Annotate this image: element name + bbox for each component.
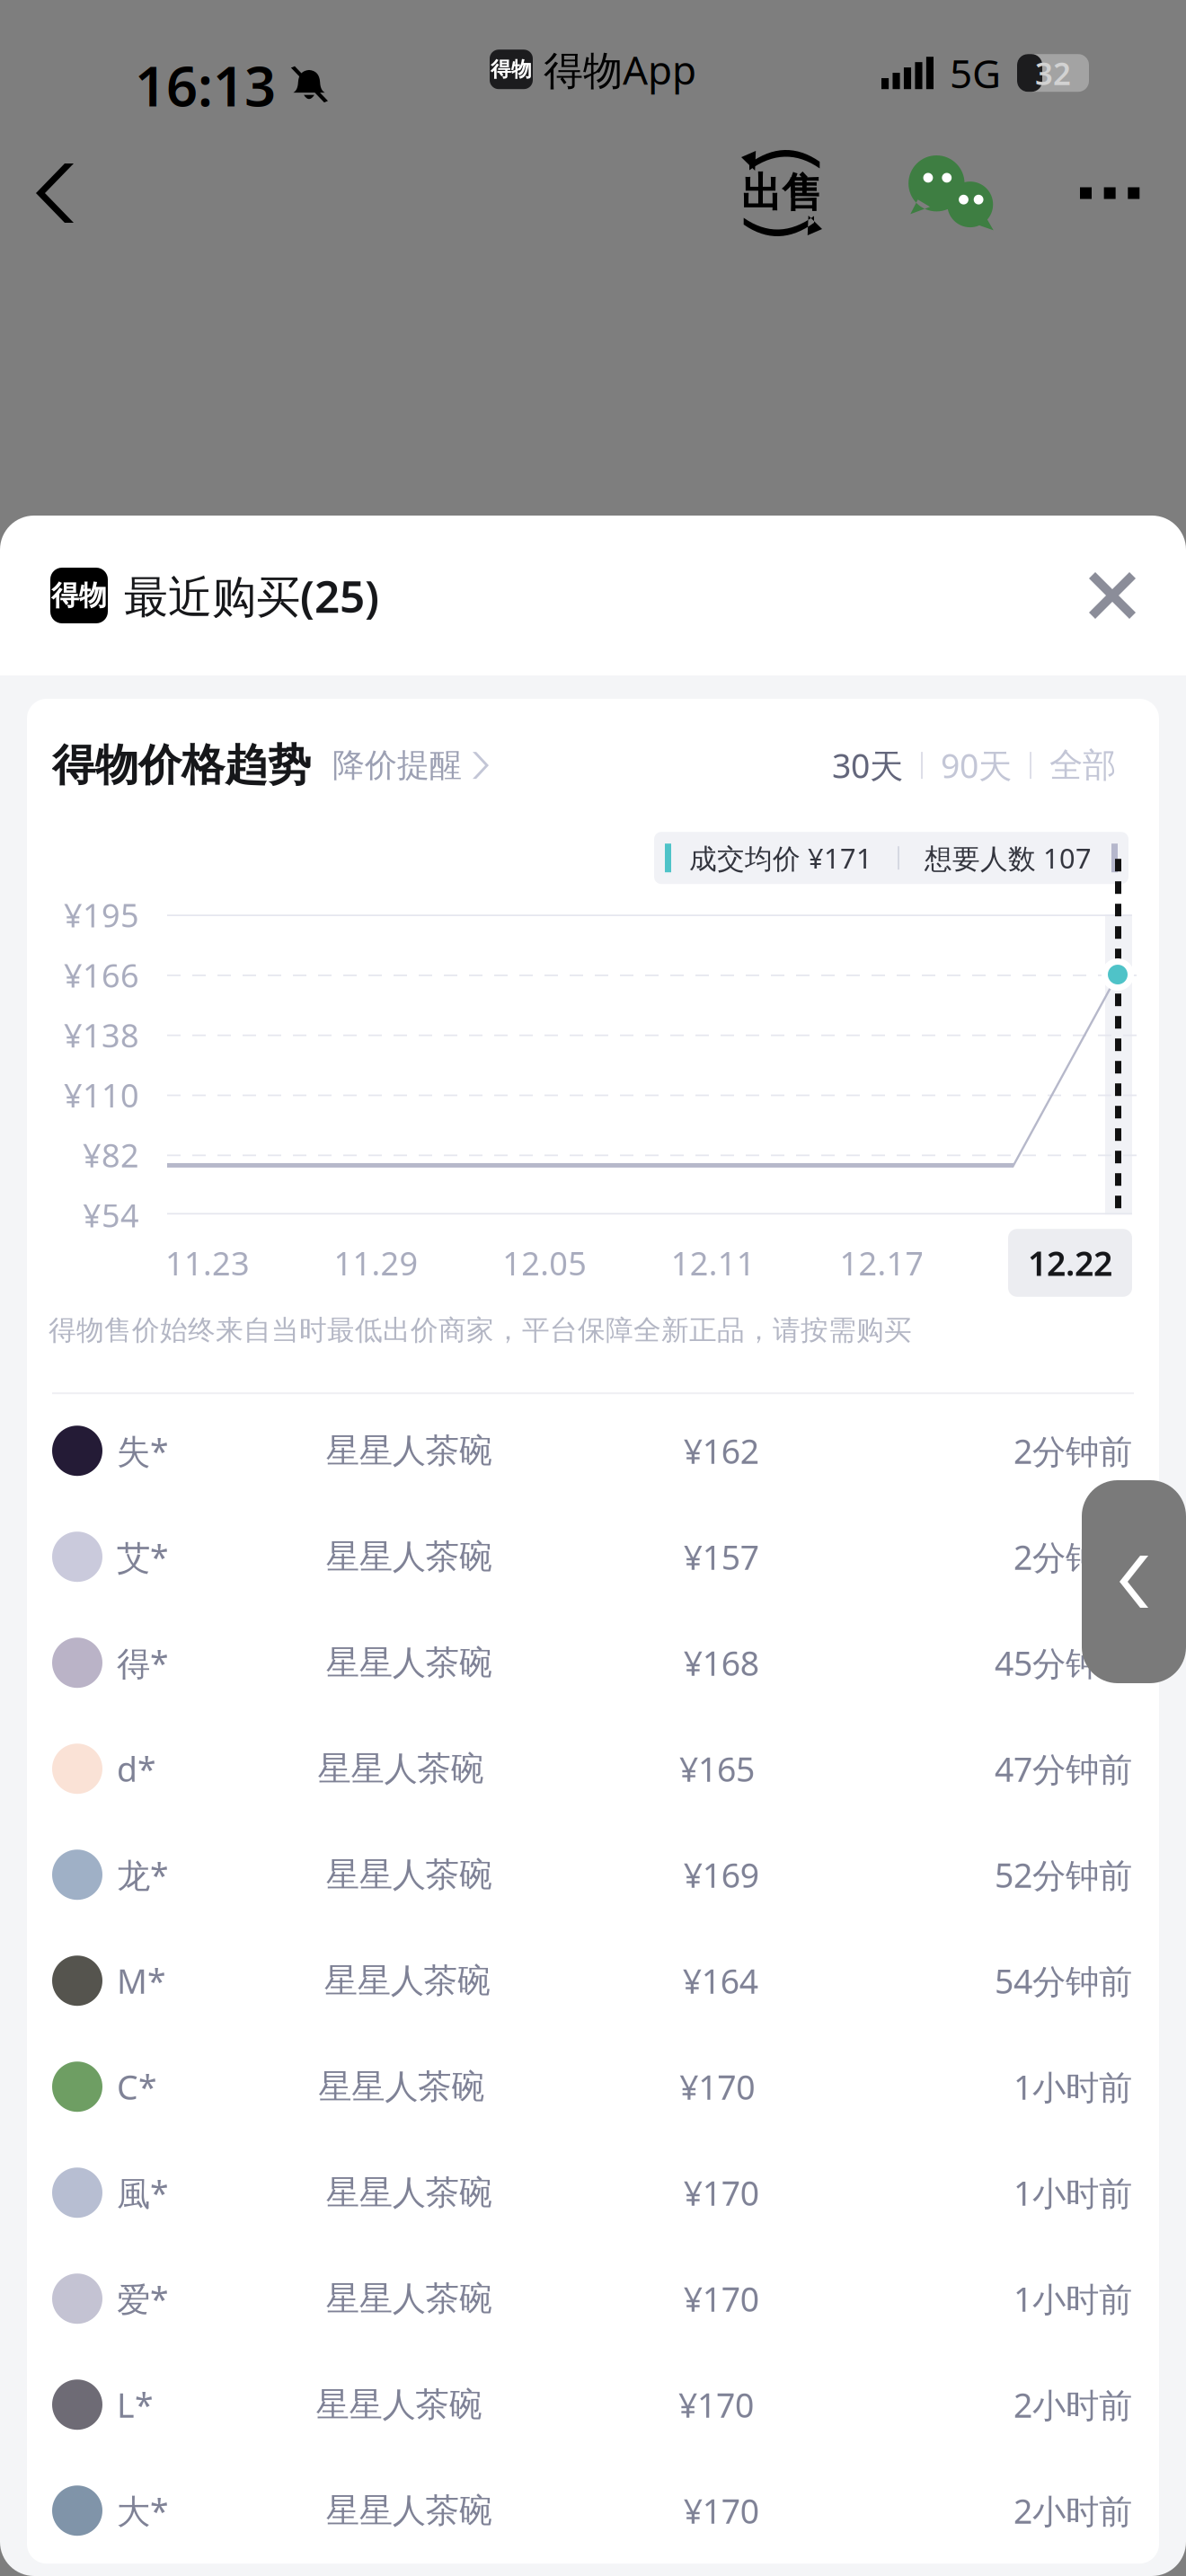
staticText: 星星人茶碗 (318, 1748, 484, 1789)
staticText: 出售 (741, 168, 822, 218)
staticText: 90天 (941, 743, 1012, 788)
button[interactable]: 失* (27, 1398, 1159, 1504)
staticText: ¥110 (64, 1073, 139, 1116)
button[interactable]: 風* (27, 2140, 1159, 2246)
staticText: L* (117, 2382, 154, 2427)
staticText: 星星人茶碗 (316, 2384, 482, 2425)
staticText: 2分钟前 (1013, 1534, 1132, 1579)
staticText: d* (117, 1746, 156, 1791)
staticText: 星星人茶碗 (318, 2066, 484, 2107)
staticText: 2小时前 (1013, 2488, 1132, 2533)
staticText: 大* (117, 2488, 169, 2533)
button[interactable]: 大* (27, 2458, 1159, 2564)
staticText: 全部 (1049, 745, 1116, 786)
staticText: ¥169 (683, 1852, 759, 1897)
staticText: 成交均价 ¥171 (689, 840, 872, 876)
button[interactable]: 微信分享 (889, 153, 1015, 234)
staticText: 龙* (117, 1852, 169, 1897)
staticText: ¥157 (683, 1534, 759, 1579)
staticText: 得物价格趋势 (52, 739, 311, 792)
staticText: 1小时前 (1013, 2064, 1132, 2109)
staticText: ¥82 (83, 1133, 139, 1176)
staticText: ¥195 (64, 893, 139, 936)
staticText: 星星人茶碗 (326, 1642, 492, 1683)
staticText: ¥164 (683, 1958, 758, 2003)
staticText: ¥165 (679, 1746, 755, 1791)
staticText: 星星人茶碗 (324, 1960, 490, 2001)
staticText: 16:13 (135, 49, 276, 122)
staticText: 星星人茶碗 (326, 1430, 492, 1471)
staticText: 得物 (51, 579, 107, 612)
staticText: 風* (117, 2170, 169, 2215)
staticText: ¥162 (683, 1428, 759, 1473)
staticText: ¥166 (64, 953, 139, 996)
button[interactable]: 30天 (814, 743, 921, 788)
staticText: 32 (1035, 52, 1071, 94)
staticText: 45分钟前 (995, 1640, 1132, 1685)
staticText: 星星人茶碗 (326, 1854, 492, 1895)
staticText: 30天 (832, 743, 903, 788)
staticText: 47分钟前 (995, 1746, 1132, 1791)
staticText: 12.05 (502, 1241, 587, 1284)
staticText: M* (117, 1958, 166, 2003)
staticText: 艾* (117, 1534, 169, 1579)
staticText: 星星人茶碗 (326, 2278, 492, 2319)
staticText: ¥168 (683, 1640, 759, 1685)
staticText: 11.29 (334, 1241, 418, 1284)
staticText: C* (117, 2064, 157, 2109)
staticText: 想要人数 107 (925, 840, 1092, 876)
button[interactable]: 爱* (27, 2246, 1159, 2352)
staticText: 11.23 (165, 1241, 250, 1284)
staticText: 12.17 (840, 1241, 924, 1284)
staticText: 星星人茶碗 (326, 2490, 492, 2531)
button[interactable]: 降价提醒 (311, 737, 489, 794)
staticText: 失* (117, 1428, 169, 1473)
button[interactable]: 更多 (1048, 148, 1163, 238)
staticText: ¥170 (683, 2488, 759, 2533)
staticText: ¥170 (683, 2276, 759, 2321)
staticText: ¥170 (683, 2170, 759, 2215)
button[interactable]: 展开 (1082, 1480, 1186, 1683)
button[interactable]: 关闭 (1064, 547, 1161, 644)
staticText: 52分钟前 (995, 1852, 1132, 1897)
staticText: 得物App (544, 43, 696, 96)
button[interactable]: d* (27, 1716, 1159, 1822)
button[interactable]: 龙* (27, 1822, 1159, 1928)
staticText: 爱* (117, 2276, 169, 2321)
staticText: ¥170 (678, 2382, 754, 2427)
staticText: 1小时前 (1013, 2170, 1132, 2215)
button[interactable]: 90天 (923, 743, 1030, 788)
button[interactable]: 全部 (1031, 745, 1134, 786)
staticText: 星星人茶碗 (326, 1536, 492, 1577)
button[interactable]: M* (27, 1928, 1159, 2034)
staticText: 最近购买(25) (124, 566, 379, 625)
staticText: ¥138 (64, 1013, 139, 1056)
staticText: 5G (950, 47, 1001, 99)
staticText: 降价提醒 (332, 745, 462, 785)
staticText: 12.11 (671, 1241, 755, 1284)
button[interactable]: L* (27, 2352, 1159, 2458)
staticText: 2小时前 (1013, 2382, 1132, 2427)
staticText: 得物售价始终来自当时最低出价商家，平台保障全新正品，请按需购买 (49, 1313, 912, 1347)
staticText: 得物 (491, 57, 532, 82)
button[interactable]: 返回 (0, 140, 110, 246)
staticText: 12.22 (1028, 1241, 1112, 1285)
staticText: 54分钟前 (995, 1958, 1132, 2003)
staticText: 得* (117, 1640, 169, 1685)
staticText: 2分钟前 (1013, 1428, 1132, 1473)
staticText: 1小时前 (1013, 2276, 1132, 2321)
button[interactable]: C* (27, 2034, 1159, 2140)
staticText: 星星人茶碗 (326, 2172, 492, 2213)
button[interactable]: 得* (27, 1610, 1159, 1716)
staticText: ¥170 (680, 2064, 755, 2109)
button[interactable]: 艾* (27, 1504, 1159, 1610)
staticText: ¥54 (83, 1193, 139, 1236)
button[interactable]: 出售 (715, 148, 848, 238)
